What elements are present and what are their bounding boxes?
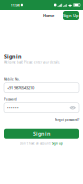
staticText: Mobile No. <box>4 78 20 81</box>
staticText: Password <box>4 98 17 101</box>
staticText: Sign in <box>4 53 21 60</box>
button[interactable]: Forgot password? <box>55 118 79 122</box>
staticText: Home <box>43 13 54 18</box>
staticText: •••••• <box>7 105 19 110</box>
staticText: Don't have an account? <box>20 142 51 145</box>
button[interactable]: Sign in <box>4 129 79 139</box>
staticText: Sign in <box>33 130 50 137</box>
staticText: 11:04 <box>10 2 19 8</box>
staticText: +91 9876543210 <box>7 85 34 90</box>
button[interactable]: Sign Up <box>63 11 79 20</box>
staticText: Sign up <box>52 142 63 145</box>
staticText: Forgot password? <box>55 118 79 122</box>
button[interactable]: Sign up <box>52 142 63 145</box>
staticText: Sign Up <box>63 13 79 18</box>
staticText: Welcome back! Please enter your details. <box>4 61 60 64</box>
